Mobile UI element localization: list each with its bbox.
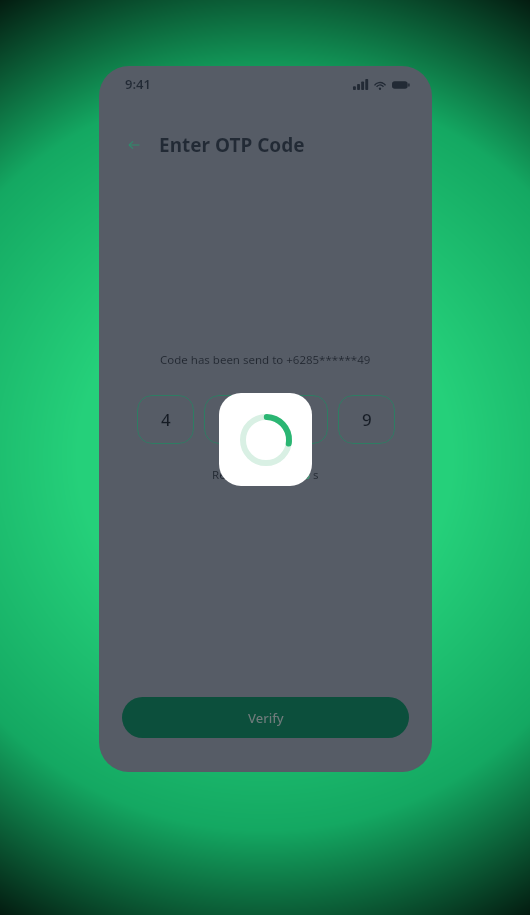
- staticText: 9:41: [125, 75, 151, 93]
- staticText: 4: [161, 408, 171, 431]
- staticText: 9: [362, 408, 372, 431]
- staticText: Code has been send to +6285******49: [160, 352, 371, 368]
- button[interactable]: Back: [121, 132, 147, 158]
- button[interactable]: OTP digit 9: [338, 395, 395, 444]
- staticText: Resend code in 56 s: [212, 467, 319, 483]
- button[interactable]: OTP digit empty: [204, 395, 261, 444]
- staticText: Verify: [248, 709, 284, 727]
- button[interactable]: OTP digit 4: [137, 395, 194, 444]
- staticText: Enter OTP Code: [159, 132, 305, 158]
- button[interactable]: OTP digit empty: [271, 395, 328, 444]
- button[interactable]: Verify: [122, 697, 409, 738]
